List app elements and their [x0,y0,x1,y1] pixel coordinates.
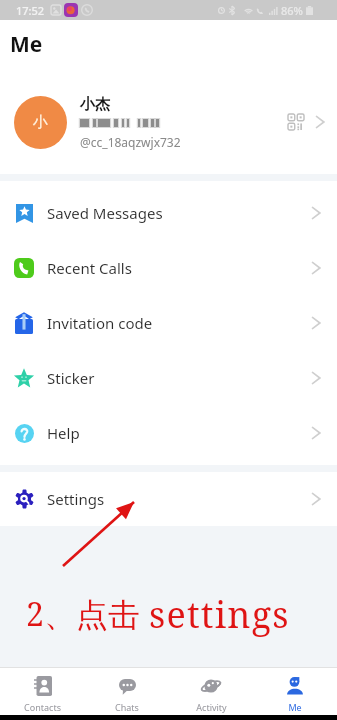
staticText: 小杰 [80,95,110,114]
staticText: 2、点击 [26,592,140,636]
staticText: Me [10,30,43,59]
staticText: Help [47,423,80,443]
button[interactable]: Contacts [0,668,85,715]
staticText: Sticker [47,368,95,388]
button[interactable]: 小 [0,70,337,174]
button[interactable]: Invitation code [0,295,337,350]
button[interactable]: Chats [85,668,169,715]
staticText: Activity [196,701,227,713]
button[interactable]: Help [0,405,337,460]
button[interactable]: Activity [169,668,253,715]
staticText: 86% [281,3,303,18]
staticText: Contacts [24,701,61,713]
button[interactable]: Saved Messages [0,185,337,240]
staticText: Chats [115,701,139,713]
staticText: Recent Calls [47,258,132,278]
button[interactable]: QR code [283,109,309,135]
staticText: @cc_18aqzwjx732 [80,134,181,150]
staticText: Settings [47,489,105,509]
button[interactable]: Settings [0,472,337,526]
staticText: Saved Messages [47,203,163,223]
staticText: settings [149,590,290,639]
button[interactable]: Me [253,668,337,715]
staticText: 17:52 [16,3,45,18]
staticText: Invitation code [47,313,153,333]
staticText: 小 [33,113,48,132]
button[interactable]: Sticker [0,350,337,405]
staticText: Me [288,701,302,713]
button[interactable]: Recent Calls [0,240,337,295]
